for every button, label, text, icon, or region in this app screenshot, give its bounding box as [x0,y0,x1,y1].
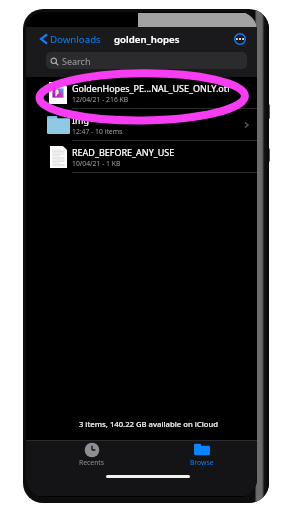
staticText: 3 items, 140.22 GB available on iCloud [33,419,257,429]
staticText: 10/04/21 - 1 KB [72,159,121,168]
staticText: Downloads [50,33,101,46]
button[interactable]: More options [234,33,246,45]
staticText: Browse [190,458,214,467]
button[interactable]: Recents [64,443,120,467]
staticText: 12/04/21 - 216 KB [72,95,129,104]
staticText: GoldenHopes_PE...NAL_USE_ONLY.otf [72,82,231,94]
staticText: Recents [79,458,105,467]
button[interactable]: GoldenHopes_PE...NAL_USE_ONLY.otf [26,77,257,108]
button[interactable]: Img [26,109,257,140]
button[interactable]: Search [46,52,247,69]
button[interactable]: Downloads [40,32,101,46]
button[interactable]: Browse [174,443,230,467]
staticText: 12:47 - 10 items [72,127,123,136]
staticText: Search [62,55,91,67]
staticText: golden_hopes [114,33,180,46]
button[interactable]: READ_BEFORE_ANY_USE [26,141,257,172]
staticText: READ_BEFORE_ANY_USE [72,146,175,158]
staticText: Img [72,114,90,126]
